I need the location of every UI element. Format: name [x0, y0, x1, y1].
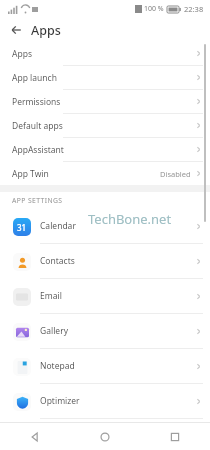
staticText: 31 — [17, 222, 27, 233]
button[interactable]: App Twin — [0, 162, 210, 185]
staticText: App launch — [12, 72, 57, 84]
staticText: APP SETTINGS — [12, 196, 63, 205]
staticText: Calendar — [40, 220, 76, 232]
staticText: Apps — [12, 48, 32, 60]
staticText: TechBone.net — [88, 210, 172, 228]
staticText: Email — [40, 290, 62, 302]
staticText: Permissions — [12, 96, 61, 108]
staticText: Gallery — [40, 325, 68, 337]
staticText: 22:38 — [184, 4, 204, 14]
button[interactable]: Apps — [0, 42, 210, 65]
button[interactable]: Recents — [140, 423, 210, 450]
staticText: Apps — [31, 22, 61, 39]
button[interactable]: Permissions — [0, 90, 210, 113]
staticText: Notepad — [40, 360, 75, 372]
staticText: Optimizer — [40, 395, 80, 407]
button[interactable]: Gallery — [0, 314, 210, 348]
button[interactable]: Optimizer — [0, 384, 210, 418]
button[interactable]: Notepad — [0, 349, 210, 383]
staticText: AppAssistant — [12, 144, 64, 156]
staticText: App Twin — [12, 168, 49, 180]
staticText: 100 % — [144, 4, 164, 14]
staticText: Disabled — [160, 169, 191, 179]
button[interactable]: Email — [0, 279, 210, 313]
button[interactable]: Default apps — [0, 114, 210, 137]
button[interactable]: Back — [0, 423, 70, 450]
button[interactable]: AppAssistant — [0, 138, 210, 161]
button[interactable]: 31 — [0, 209, 210, 243]
button[interactable]: Contacts — [0, 244, 210, 278]
staticText: Contacts — [40, 255, 75, 267]
staticText: Default apps — [12, 120, 63, 132]
button[interactable]: Home — [70, 423, 140, 450]
button[interactable]: App launch — [0, 66, 210, 89]
button[interactable]: Back — [6, 20, 26, 40]
